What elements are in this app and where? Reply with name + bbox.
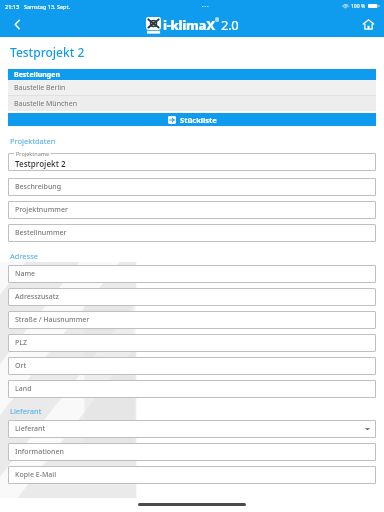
staticText: Informationen <box>15 447 64 457</box>
button[interactable]: PLZ <box>8 334 376 352</box>
staticText: Adresszusatz <box>15 292 59 302</box>
staticText: Beschreibung <box>15 182 62 192</box>
staticText: Bestellungen <box>14 70 60 80</box>
button[interactable]: Stückliste <box>8 113 376 126</box>
staticText: Kopie E-Mail <box>15 470 57 480</box>
staticText: Stückliste <box>180 115 217 125</box>
staticText: PLZ <box>15 338 28 348</box>
staticText: Name <box>15 269 36 279</box>
staticText: Projektname <box>16 150 49 157</box>
staticText: Samstag 13. Sept. <box>24 3 70 10</box>
button[interactable]: Home <box>352 12 384 37</box>
staticText: i-klimaX <box>163 16 215 34</box>
button[interactable]: Adresszusatz <box>8 288 376 306</box>
staticText: 2.0 <box>221 16 239 34</box>
button[interactable]: Baustelle München <box>8 96 376 111</box>
button[interactable]: Bestellnummer <box>8 224 376 242</box>
button[interactable]: Baustelle Berlin <box>8 80 376 95</box>
staticText: ® <box>215 17 220 24</box>
button[interactable]: Ort <box>8 357 376 375</box>
staticText: • • • <box>202 4 209 9</box>
button[interactable]: Lieferant <box>8 420 376 438</box>
button[interactable]: Bestellungen <box>8 69 376 80</box>
staticText: Testprojekt 2 <box>15 158 66 169</box>
button[interactable]: Projektnummer <box>8 201 376 219</box>
button[interactable]: Beschreibung <box>8 178 376 196</box>
staticText: Adresse <box>10 251 38 261</box>
staticText: Lieferant <box>15 424 46 434</box>
staticText: Straße / Hausnummer <box>15 315 90 325</box>
button[interactable]: Informationen <box>8 443 376 461</box>
staticText: Land <box>15 384 32 394</box>
staticText: 100 % <box>351 3 366 10</box>
staticText: 21:13 <box>5 3 20 10</box>
button[interactable]: Land <box>8 380 376 398</box>
staticText: Projektdaten <box>10 136 56 146</box>
staticText: Baustelle Berlin <box>14 83 66 93</box>
button[interactable]: Name <box>8 265 376 283</box>
staticText: Testprojekt 2 <box>10 44 85 60</box>
staticText: Ort <box>15 361 27 371</box>
staticText: Baustelle München <box>14 99 77 109</box>
staticText: Projektnummer <box>15 205 68 215</box>
button[interactable]: Testprojekt 2 <box>8 153 376 171</box>
staticText: Bestellnummer <box>15 228 67 238</box>
button[interactable]: Back <box>0 12 34 37</box>
button[interactable]: Straße / Hausnummer <box>8 311 376 329</box>
button[interactable]: Kopie E-Mail <box>8 466 376 484</box>
staticText: Lieferant <box>10 406 42 416</box>
